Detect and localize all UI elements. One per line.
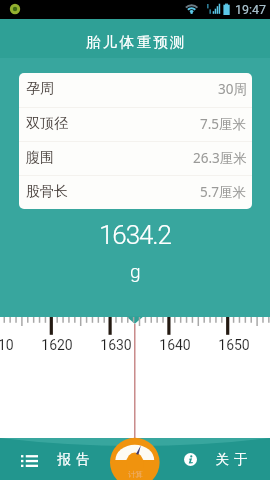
button[interactable]: 关于 (161, 451, 270, 468)
staticText: 7.5厘米 (200, 115, 247, 133)
staticText: 30周 (218, 80, 247, 98)
staticText: 1630 (100, 337, 132, 353)
staticText: 1610 (0, 337, 14, 353)
staticText: 1634.2 (99, 220, 171, 250)
staticText: g (130, 260, 141, 282)
button[interactable]: 孕周 (19, 73, 252, 107)
button[interactable]: 股骨长 (19, 176, 252, 209)
staticText: 1650 (218, 337, 250, 353)
staticText: 计算 (128, 470, 143, 479)
button[interactable]: 双顶径 (19, 108, 252, 141)
staticText: 19:47 (235, 2, 267, 17)
staticText: 胎儿体重预测 (86, 33, 187, 51)
staticText: 1620 (41, 337, 73, 353)
staticText: 腹围 (26, 149, 54, 167)
button[interactable]: 报告 (0, 451, 109, 468)
button[interactable]: 计算 (0, 0, 270, 480)
staticText: 5.7厘米 (200, 183, 247, 201)
staticText: 孕周 (26, 80, 54, 98)
staticText: 股骨长 (26, 183, 68, 201)
button[interactable]: 腹围 (19, 142, 252, 175)
staticText: 关于 (213, 451, 250, 468)
staticText: 1640 (159, 337, 191, 353)
staticText: 双顶径 (26, 115, 68, 133)
staticText: 报告 (55, 451, 92, 468)
staticText: 26.3厘米 (193, 149, 247, 167)
